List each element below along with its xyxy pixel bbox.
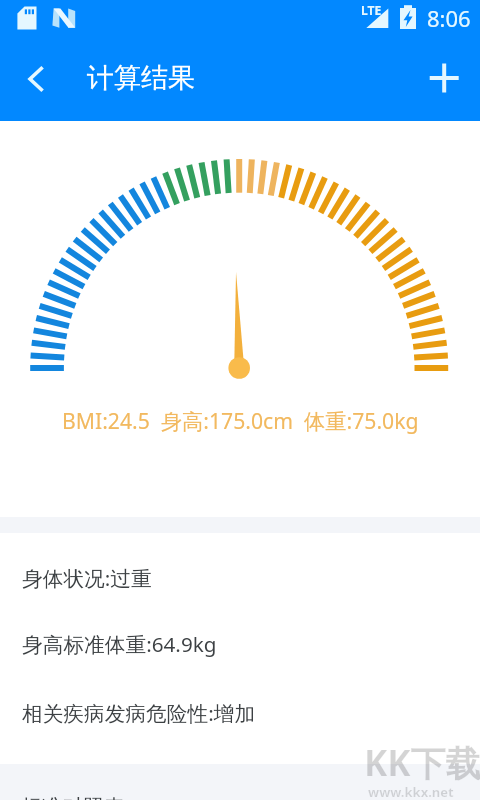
staticText: LTE: [361, 2, 382, 18]
button[interactable]: 标准对照表: [0, 764, 480, 800]
staticText: 身体状况:过重: [22, 564, 152, 592]
button[interactable]: 身高标准体重:64.9kg: [0, 626, 480, 666]
staticText: BMI:24.5 身高:175.0cm 体重:75.0kg: [62, 406, 419, 435]
button[interactable]: 相关疾病发病危险性:增加: [0, 695, 480, 735]
staticText: 标准对照表: [21, 794, 125, 800]
button[interactable]: Back: [8, 51, 64, 107]
staticText: KK下载: [364, 739, 480, 787]
button[interactable]: 身体状况:过重: [0, 560, 480, 600]
button[interactable]: Add: [416, 50, 472, 106]
staticText: www.kkx.net: [368, 783, 454, 800]
staticText: 8:06: [427, 3, 471, 33]
staticText: 计算结果: [87, 61, 195, 95]
staticText: 身高标准体重:64.9kg: [22, 630, 217, 658]
staticText: 相关疾病发病危险性:增加: [22, 699, 256, 727]
